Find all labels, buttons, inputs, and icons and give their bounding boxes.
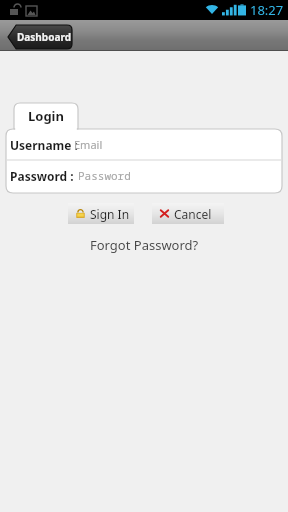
button[interactable]: Cancel [152,203,224,224]
button[interactable]: Username : [7,129,281,160]
staticText: Dashboard [17,30,71,44]
staticText: Cancel [174,206,212,222]
staticText: Email [74,137,103,152]
staticText: Username : [10,137,78,153]
staticText: Password : [10,168,74,184]
button[interactable]: Forgot Password? [84,234,205,256]
button[interactable]: Password : [7,160,281,191]
staticText: Login [28,107,64,125]
staticText: Password [78,168,131,183]
staticText: Sign In [90,206,130,222]
button[interactable]: Dashboard [8,25,72,49]
staticText: 18:27 [250,1,284,19]
button[interactable]: Login [14,103,78,129]
staticText: Forgot Password? [90,236,199,254]
button[interactable]: Sign In [68,203,134,224]
